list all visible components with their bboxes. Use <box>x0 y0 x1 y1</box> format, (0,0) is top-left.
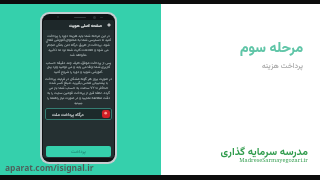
staticText: درگاه پرداخت ملت <box>52 111 84 118</box>
button[interactable]: درگاه پرداخت ملت <box>45 108 112 120</box>
staticText: در صورت بروز هر گونه مشکل در فرایند پردا… <box>45 76 112 106</box>
staticText: صفحه اصلی هویت <box>69 22 102 29</box>
staticText: پرداخت هزینه <box>223 60 303 72</box>
button[interactable]: پرداخت <box>46 146 111 157</box>
staticText: aparat.com/isignal.ir <box>5 162 94 174</box>
staticText: مدرسه سرمایه گذاری <box>198 144 308 160</box>
staticText: پرداخت <box>71 148 86 156</box>
staticText: پس از پرداخت موفق، ظرف چند دقیقه حساب کا… <box>45 60 112 75</box>
staticText: MadreseSarmayegozari.ir <box>208 156 308 164</box>
button[interactable]: Add <box>106 22 112 28</box>
staticText: مرحله سوم <box>203 38 303 60</box>
staticText: در این مرحله شما باید هزینه دوره را پردا… <box>45 33 112 58</box>
